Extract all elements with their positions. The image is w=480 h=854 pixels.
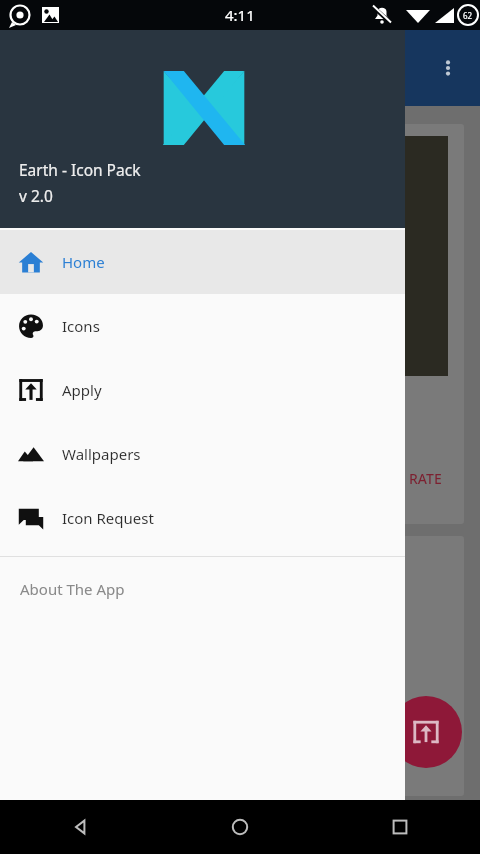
button[interactable]: Icon Request xyxy=(0,486,405,550)
other: Home xyxy=(18,249,44,275)
staticText: Apply xyxy=(62,380,102,400)
button[interactable]: Home xyxy=(160,800,320,854)
button[interactable]: RATE xyxy=(409,469,442,488)
staticText: Icon Request xyxy=(62,508,154,528)
staticText: Earth - Icon Pack xyxy=(19,159,141,180)
other: Icons xyxy=(18,313,44,339)
button[interactable]: Apply xyxy=(0,358,405,422)
other: Wallpapers xyxy=(18,441,44,467)
button[interactable]: Icons xyxy=(0,294,405,358)
button[interactable]: Back xyxy=(0,800,160,854)
staticText: v 2.0 xyxy=(19,185,53,206)
button[interactable]: Home xyxy=(0,230,405,294)
button[interactable]: Wallpapers xyxy=(0,422,405,486)
other: Icon Request xyxy=(18,505,44,531)
staticText: 4:11 xyxy=(225,5,255,25)
staticText: 62 xyxy=(463,10,473,21)
other: Apply xyxy=(18,377,44,403)
button[interactable]: Apply icon pack xyxy=(390,696,462,768)
button[interactable]: About The App xyxy=(0,557,405,621)
staticText: Icons xyxy=(62,316,100,336)
button[interactable]: Recent apps xyxy=(320,800,480,854)
button[interactable]: More options xyxy=(428,48,468,88)
staticText: Wallpapers xyxy=(62,444,141,464)
staticText: Home xyxy=(62,252,105,272)
staticText: About The App xyxy=(20,579,125,599)
